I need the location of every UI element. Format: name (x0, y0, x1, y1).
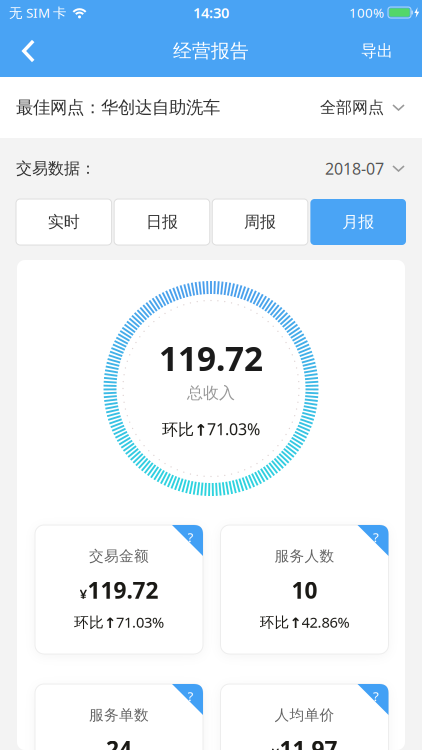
staticText: 交易金额 (89, 547, 149, 565)
staticText: 环比↑42.86% (259, 612, 349, 632)
button[interactable]: 说明 (35, 525, 203, 654)
staticText: 实时 (48, 212, 80, 232)
button[interactable]: 月报 (310, 199, 406, 245)
button[interactable]: 实时 (16, 199, 112, 245)
staticText: 24 (106, 734, 132, 750)
staticText: 服务人数 (274, 547, 334, 565)
staticText: 2018-07 (325, 158, 384, 179)
staticText: ? (373, 687, 379, 705)
staticText: ¥119.72 (79, 575, 158, 605)
button[interactable]: 返回 (0, 38, 46, 64)
staticText: 无 SIM 卡 (9, 4, 66, 21)
staticText: ¥11.97 (271, 734, 337, 750)
button[interactable]: 导出 (361, 41, 422, 61)
button[interactable]: 说明 (35, 684, 203, 750)
staticText: 14:30 (193, 3, 229, 22)
staticText: 100% (349, 4, 384, 21)
staticText: 全部网点 (320, 98, 384, 117)
button[interactable]: 全部网点 (320, 98, 405, 117)
button[interactable]: 2018-07 (325, 158, 405, 179)
staticText: 交易数据： (16, 159, 96, 178)
staticText: 环比↑71.03% (162, 418, 260, 440)
staticText: 人均单价 (274, 706, 334, 724)
staticText: ? (187, 528, 193, 546)
staticText: ? (373, 528, 379, 546)
staticText: 日报 (146, 212, 178, 232)
staticText: 环比↑71.03% (74, 612, 164, 632)
staticText: 导出 (361, 41, 393, 61)
staticText: 119.72 (159, 336, 263, 380)
button[interactable]: 说明 (220, 684, 388, 750)
button[interactable]: 周报 (212, 199, 308, 245)
staticText: ? (187, 687, 193, 705)
button[interactable]: 日报 (114, 199, 210, 245)
staticText: 经营报告 (173, 39, 249, 62)
staticText: 服务单数 (89, 706, 149, 724)
staticText: 月报 (342, 212, 374, 232)
button[interactable]: 说明 (220, 525, 388, 654)
staticText: 周报 (244, 212, 276, 232)
staticText: 总收入 (187, 383, 235, 403)
staticText: 最佳网点：华创达自助洗车 (16, 97, 220, 118)
staticText: 10 (291, 575, 317, 605)
